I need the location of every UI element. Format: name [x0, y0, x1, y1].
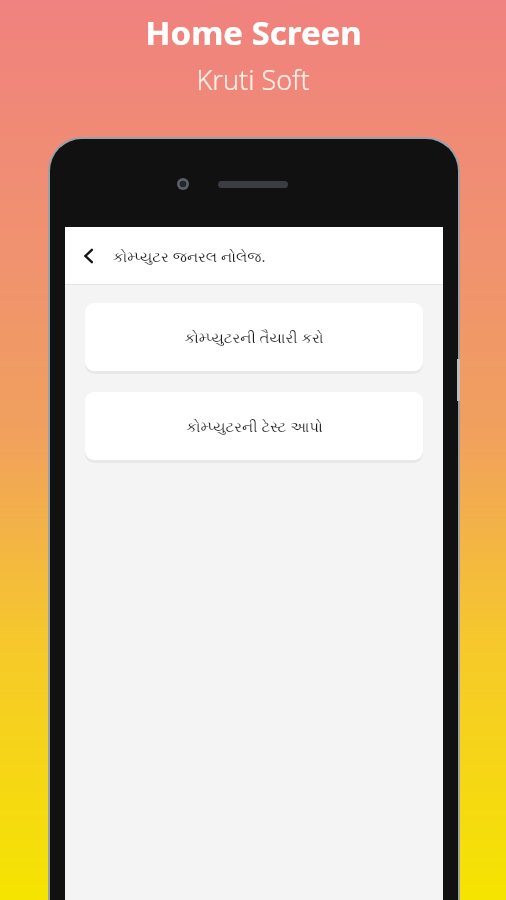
- staticText: Home Screen: [145, 10, 362, 55]
- staticText: કોમ્પ્યુટરની ટેસ્ટ આપો: [186, 416, 323, 436]
- staticText: Kruti Soft: [196, 61, 310, 98]
- button[interactable]: કોમ્પ્યુટરની તૈયારી કરો: [85, 303, 423, 371]
- staticText: કોમ્પ્યુટરની તૈયારી કરો: [184, 327, 324, 347]
- staticText: કોમ્પ્યુટર જનરલ નોલેજ.: [113, 246, 266, 266]
- button[interactable]: Back: [65, 227, 113, 284]
- button[interactable]: કોમ્પ્યુટરની ટેસ્ટ આપો: [85, 392, 423, 460]
